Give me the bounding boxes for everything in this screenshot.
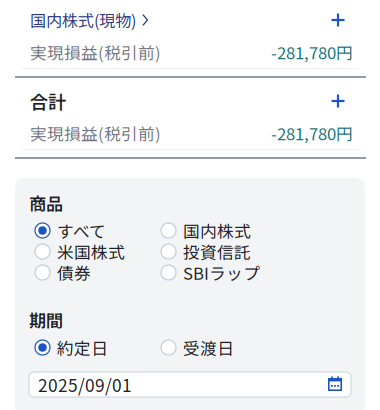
- staticText: 2025/09/01: [38, 372, 132, 397]
- staticText: 債券: [57, 260, 91, 284]
- staticText: すべて: [57, 218, 106, 242]
- button[interactable]: SBIラップ: [161, 262, 311, 283]
- button[interactable]: 債券: [35, 262, 161, 283]
- staticText: 商品: [29, 190, 63, 216]
- button[interactable]: 受渡日: [161, 337, 311, 358]
- staticText: 約定日: [57, 335, 108, 359]
- button[interactable]: 2025/09/01: [29, 372, 351, 397]
- staticText: 実現損益(税引前): [30, 40, 161, 64]
- staticText: 国内株式(現物): [30, 8, 136, 32]
- button[interactable]: 米国株式: [35, 241, 161, 262]
- staticText: -281,780円: [271, 121, 353, 145]
- staticText: 米国株式: [57, 239, 125, 263]
- button[interactable]: 国内株式: [161, 220, 311, 241]
- button[interactable]: 追加: [327, 90, 349, 112]
- button[interactable]: 追加: [327, 9, 349, 31]
- button[interactable]: すべて: [35, 220, 161, 241]
- staticText: 期間: [29, 307, 63, 333]
- button[interactable]: 国内株式(現物): [30, 7, 149, 33]
- staticText: 合計: [30, 88, 66, 114]
- staticText: 受渡日: [183, 335, 234, 359]
- staticText: SBIラップ: [183, 260, 260, 284]
- staticText: 国内株式: [183, 218, 251, 242]
- staticText: 実現損益(税引前): [30, 121, 161, 145]
- button[interactable]: 投資信託: [161, 241, 311, 262]
- staticText: 投資信託: [183, 239, 251, 263]
- staticText: -281,780円: [271, 40, 353, 64]
- button[interactable]: 約定日: [35, 337, 161, 358]
